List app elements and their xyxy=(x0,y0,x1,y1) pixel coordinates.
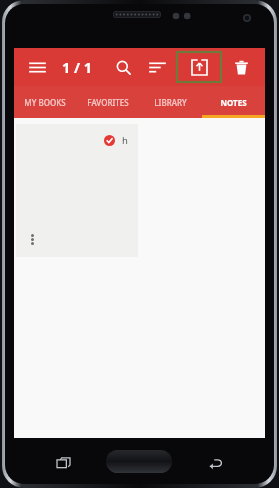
button[interactable]: Back xyxy=(204,452,226,474)
button[interactable]: Recent apps xyxy=(52,452,74,474)
button[interactable]: Sort xyxy=(142,52,172,82)
button[interactable]: Export notes xyxy=(177,52,221,82)
staticText: LIBRARY xyxy=(154,97,187,108)
staticText: MY BOOKS xyxy=(24,97,66,108)
button[interactable]: FAVORITES xyxy=(76,86,139,118)
button[interactable]: h xyxy=(16,124,138,257)
button[interactable]: MY BOOKS xyxy=(14,86,76,118)
button[interactable]: NOTES xyxy=(202,86,265,118)
staticText: 1 / 1 xyxy=(62,57,93,77)
staticText: FAVORITES xyxy=(87,97,129,108)
button[interactable]: Open navigation menu xyxy=(24,54,50,80)
button[interactable]: LIBRARY xyxy=(139,86,202,118)
staticText: NOTES xyxy=(220,97,247,108)
staticText: h xyxy=(122,134,128,147)
button[interactable]: More options xyxy=(24,231,40,247)
button[interactable]: Home xyxy=(106,450,172,473)
button[interactable]: Delete xyxy=(226,52,256,82)
button[interactable]: Search xyxy=(108,52,138,82)
